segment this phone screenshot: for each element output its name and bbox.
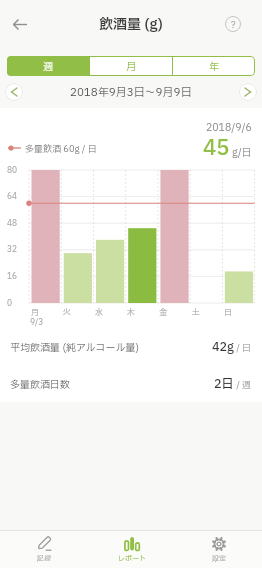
button[interactable]: 平均飲酒量 (純アルコール量) bbox=[10, 328, 252, 366]
staticText: 2日 bbox=[214, 375, 234, 393]
button[interactable]: 多量飲酒日数 bbox=[10, 366, 252, 402]
staticText: 年 bbox=[209, 59, 219, 74]
staticText: 64 bbox=[7, 191, 18, 203]
staticText: 日 bbox=[224, 307, 232, 319]
button[interactable]: 週 bbox=[7, 56, 89, 76]
staticText: 32 bbox=[7, 244, 18, 256]
staticText: 多量飲酒 60g / 日 bbox=[25, 142, 97, 154]
staticText: 月 bbox=[126, 59, 136, 74]
staticText: / 日 bbox=[234, 341, 252, 354]
staticText: 水 bbox=[95, 307, 103, 319]
button[interactable]: ? bbox=[225, 16, 241, 32]
button[interactable] bbox=[239, 83, 257, 101]
staticText: レポート bbox=[118, 554, 146, 564]
staticText: 週 bbox=[43, 59, 53, 74]
staticText: 木 bbox=[127, 307, 135, 319]
staticText: 多量飲酒日数 bbox=[10, 377, 70, 392]
staticText: 0 bbox=[7, 298, 13, 310]
button[interactable]: 年 bbox=[173, 56, 255, 76]
staticText: 記録 bbox=[37, 554, 51, 564]
staticText: 16 bbox=[7, 271, 18, 283]
staticText: 月 bbox=[31, 307, 39, 319]
staticText: 45 bbox=[203, 133, 230, 164]
staticText: g/日 bbox=[232, 145, 252, 160]
button[interactable] bbox=[5, 83, 23, 101]
staticText: 飲酒量 (g) bbox=[99, 14, 163, 35]
staticText: 設定 bbox=[212, 554, 226, 564]
button[interactable]: 設定 bbox=[175, 531, 262, 568]
staticText: 42g bbox=[212, 338, 234, 356]
staticText: ? bbox=[231, 18, 236, 31]
staticText: 土 bbox=[192, 307, 200, 319]
staticText: 平均飲酒量 (純アルコール量) bbox=[10, 340, 140, 355]
staticText: 9/3 bbox=[30, 317, 44, 329]
staticText: 火 bbox=[63, 307, 71, 319]
staticText: 金 bbox=[159, 307, 167, 319]
staticText: / 週 bbox=[234, 378, 252, 391]
button[interactable] bbox=[0, 0, 40, 48]
staticText: 80 bbox=[7, 165, 18, 177]
button[interactable]: 記録 bbox=[0, 531, 88, 568]
button[interactable]: 月 bbox=[90, 56, 172, 76]
button[interactable]: レポート bbox=[88, 531, 175, 568]
staticText: 2018年9月3日〜9月9日 bbox=[70, 84, 192, 101]
staticText: 48 bbox=[7, 218, 18, 230]
staticText: 2018/9/6 bbox=[206, 120, 252, 135]
